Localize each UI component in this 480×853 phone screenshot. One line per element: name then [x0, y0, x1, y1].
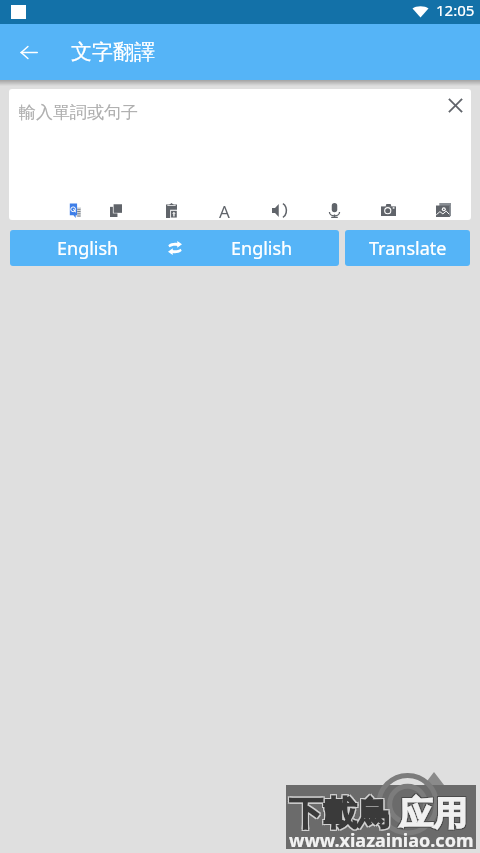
button[interactable]: Voice input [317, 193, 351, 220]
staticText: 下載鳥 [288, 793, 390, 836]
staticText: 应用 [398, 791, 466, 834]
staticText: 輸入單詞或句子 [19, 102, 138, 123]
button[interactable]: Google Translate [57, 193, 91, 220]
staticText: Translate [369, 236, 447, 261]
button[interactable]: Back [8, 32, 49, 73]
button[interactable]: Translate [345, 230, 470, 266]
staticText: 下載鳥 [290, 793, 392, 836]
staticText: 应用 [398, 793, 466, 836]
button[interactable]: Camera [371, 193, 405, 220]
staticText: 应用 [400, 793, 468, 836]
staticText: 下載鳥 [288, 791, 390, 834]
staticText: English [57, 236, 119, 261]
button[interactable]: Gallery [426, 193, 460, 220]
staticText: 下載鳥 [289, 792, 391, 835]
staticText: www.xiazainiao.com [289, 828, 474, 853]
button[interactable]: Speak aloud [262, 193, 296, 220]
staticText: 应用 [400, 791, 468, 834]
staticText: 应用 [399, 792, 467, 835]
button[interactable]: Paste [154, 193, 188, 220]
button[interactable]: Text size [207, 193, 241, 220]
staticText: English [231, 236, 293, 261]
staticText: 12:05 [436, 0, 475, 20]
button[interactable]: English [10, 230, 339, 266]
staticText: 下載鳥 [290, 791, 392, 834]
staticText: A [219, 200, 230, 220]
button[interactable]: Clear text [439, 89, 471, 121]
staticText: 文字翻譯 [71, 39, 155, 65]
button[interactable]: Copy [99, 193, 133, 220]
